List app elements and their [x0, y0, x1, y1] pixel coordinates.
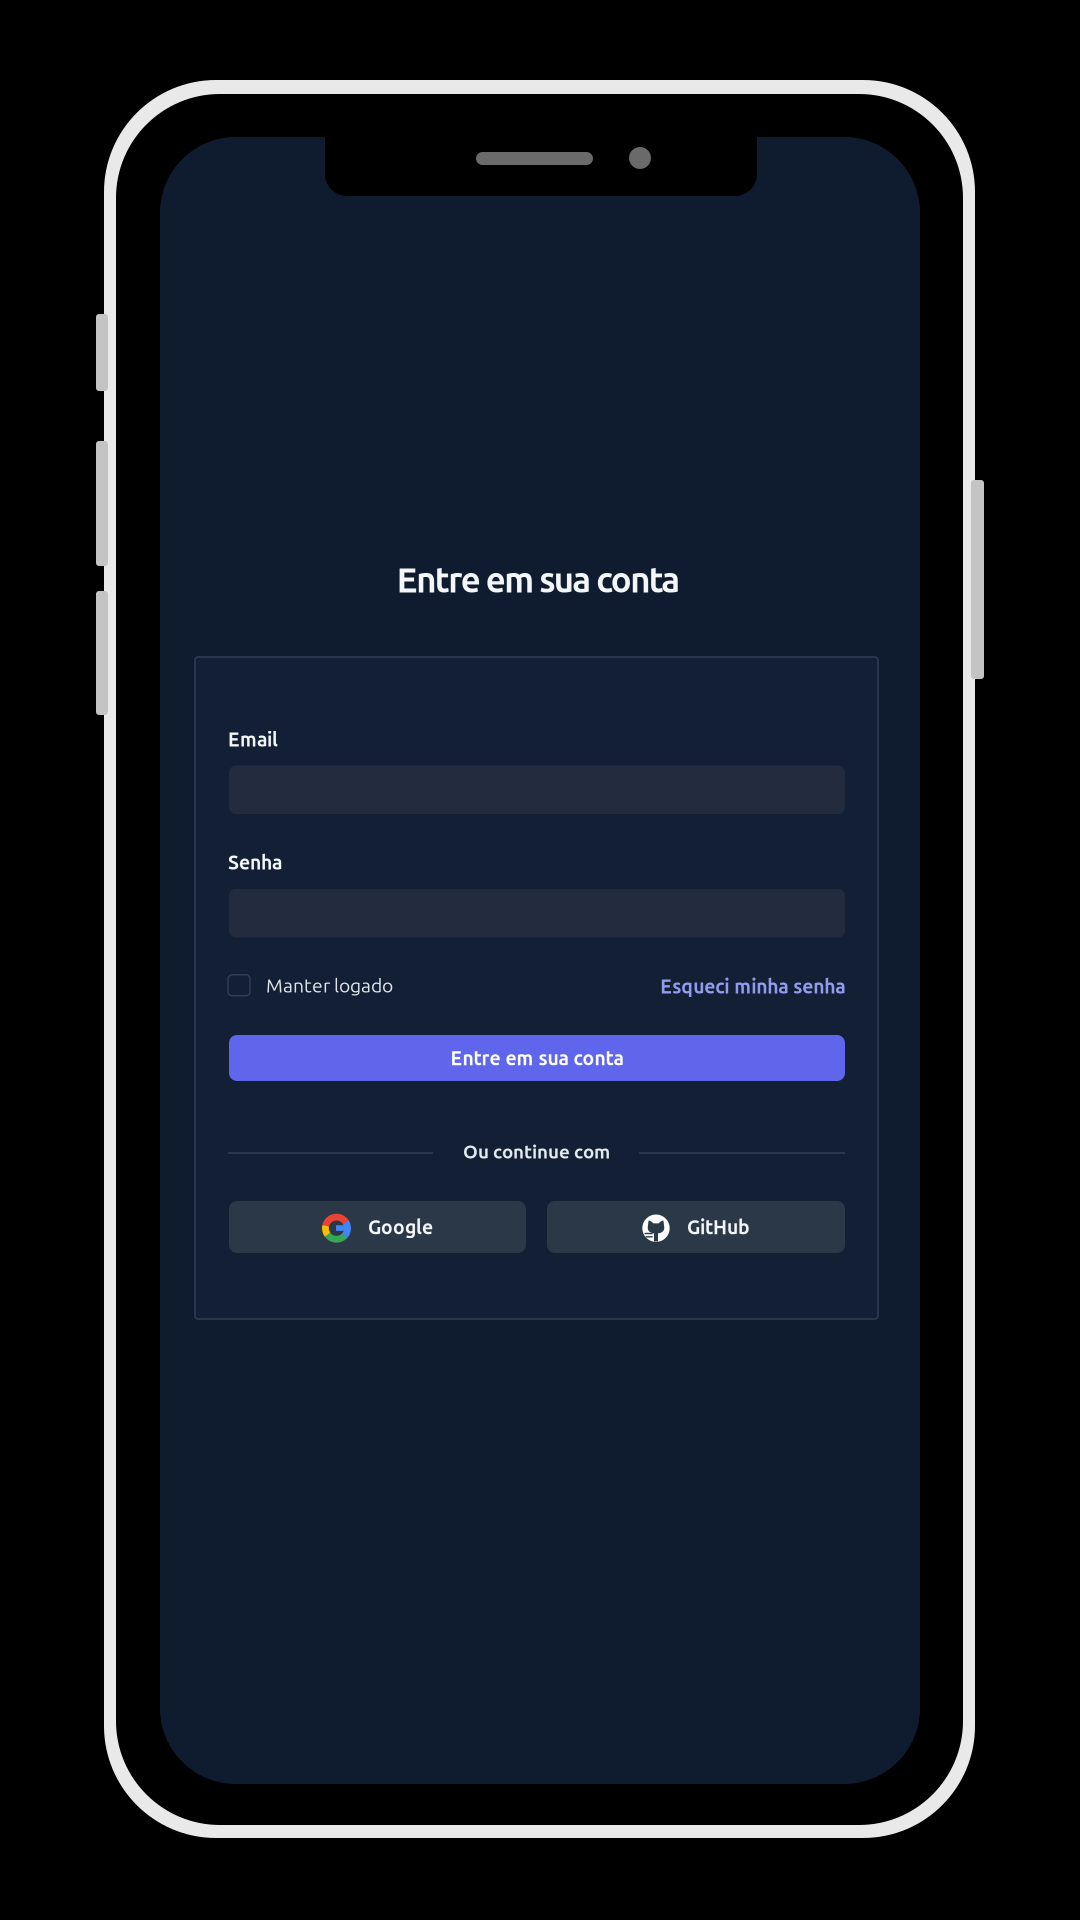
staticText: Manter logado — [266, 974, 393, 996]
staticText: Google — [368, 1216, 433, 1238]
staticText: Entre em sua conta — [450, 1047, 623, 1069]
button[interactable]: Entre em sua conta — [229, 1035, 845, 1081]
button[interactable]: Esqueci minha senha — [660, 971, 845, 1001]
staticText: Ou continue com — [463, 1141, 610, 1162]
staticText: Email — [228, 728, 278, 750]
staticText: GitHub — [687, 1216, 750, 1238]
staticText: Esqueci minha senha — [660, 975, 845, 997]
button[interactable]: Manter logado — [228, 970, 393, 1000]
staticText: Senha — [228, 851, 282, 873]
button[interactable]: Google — [229, 1201, 526, 1253]
button[interactable]: GitHub — [547, 1201, 845, 1253]
staticText: Entre em sua conta — [397, 560, 680, 599]
